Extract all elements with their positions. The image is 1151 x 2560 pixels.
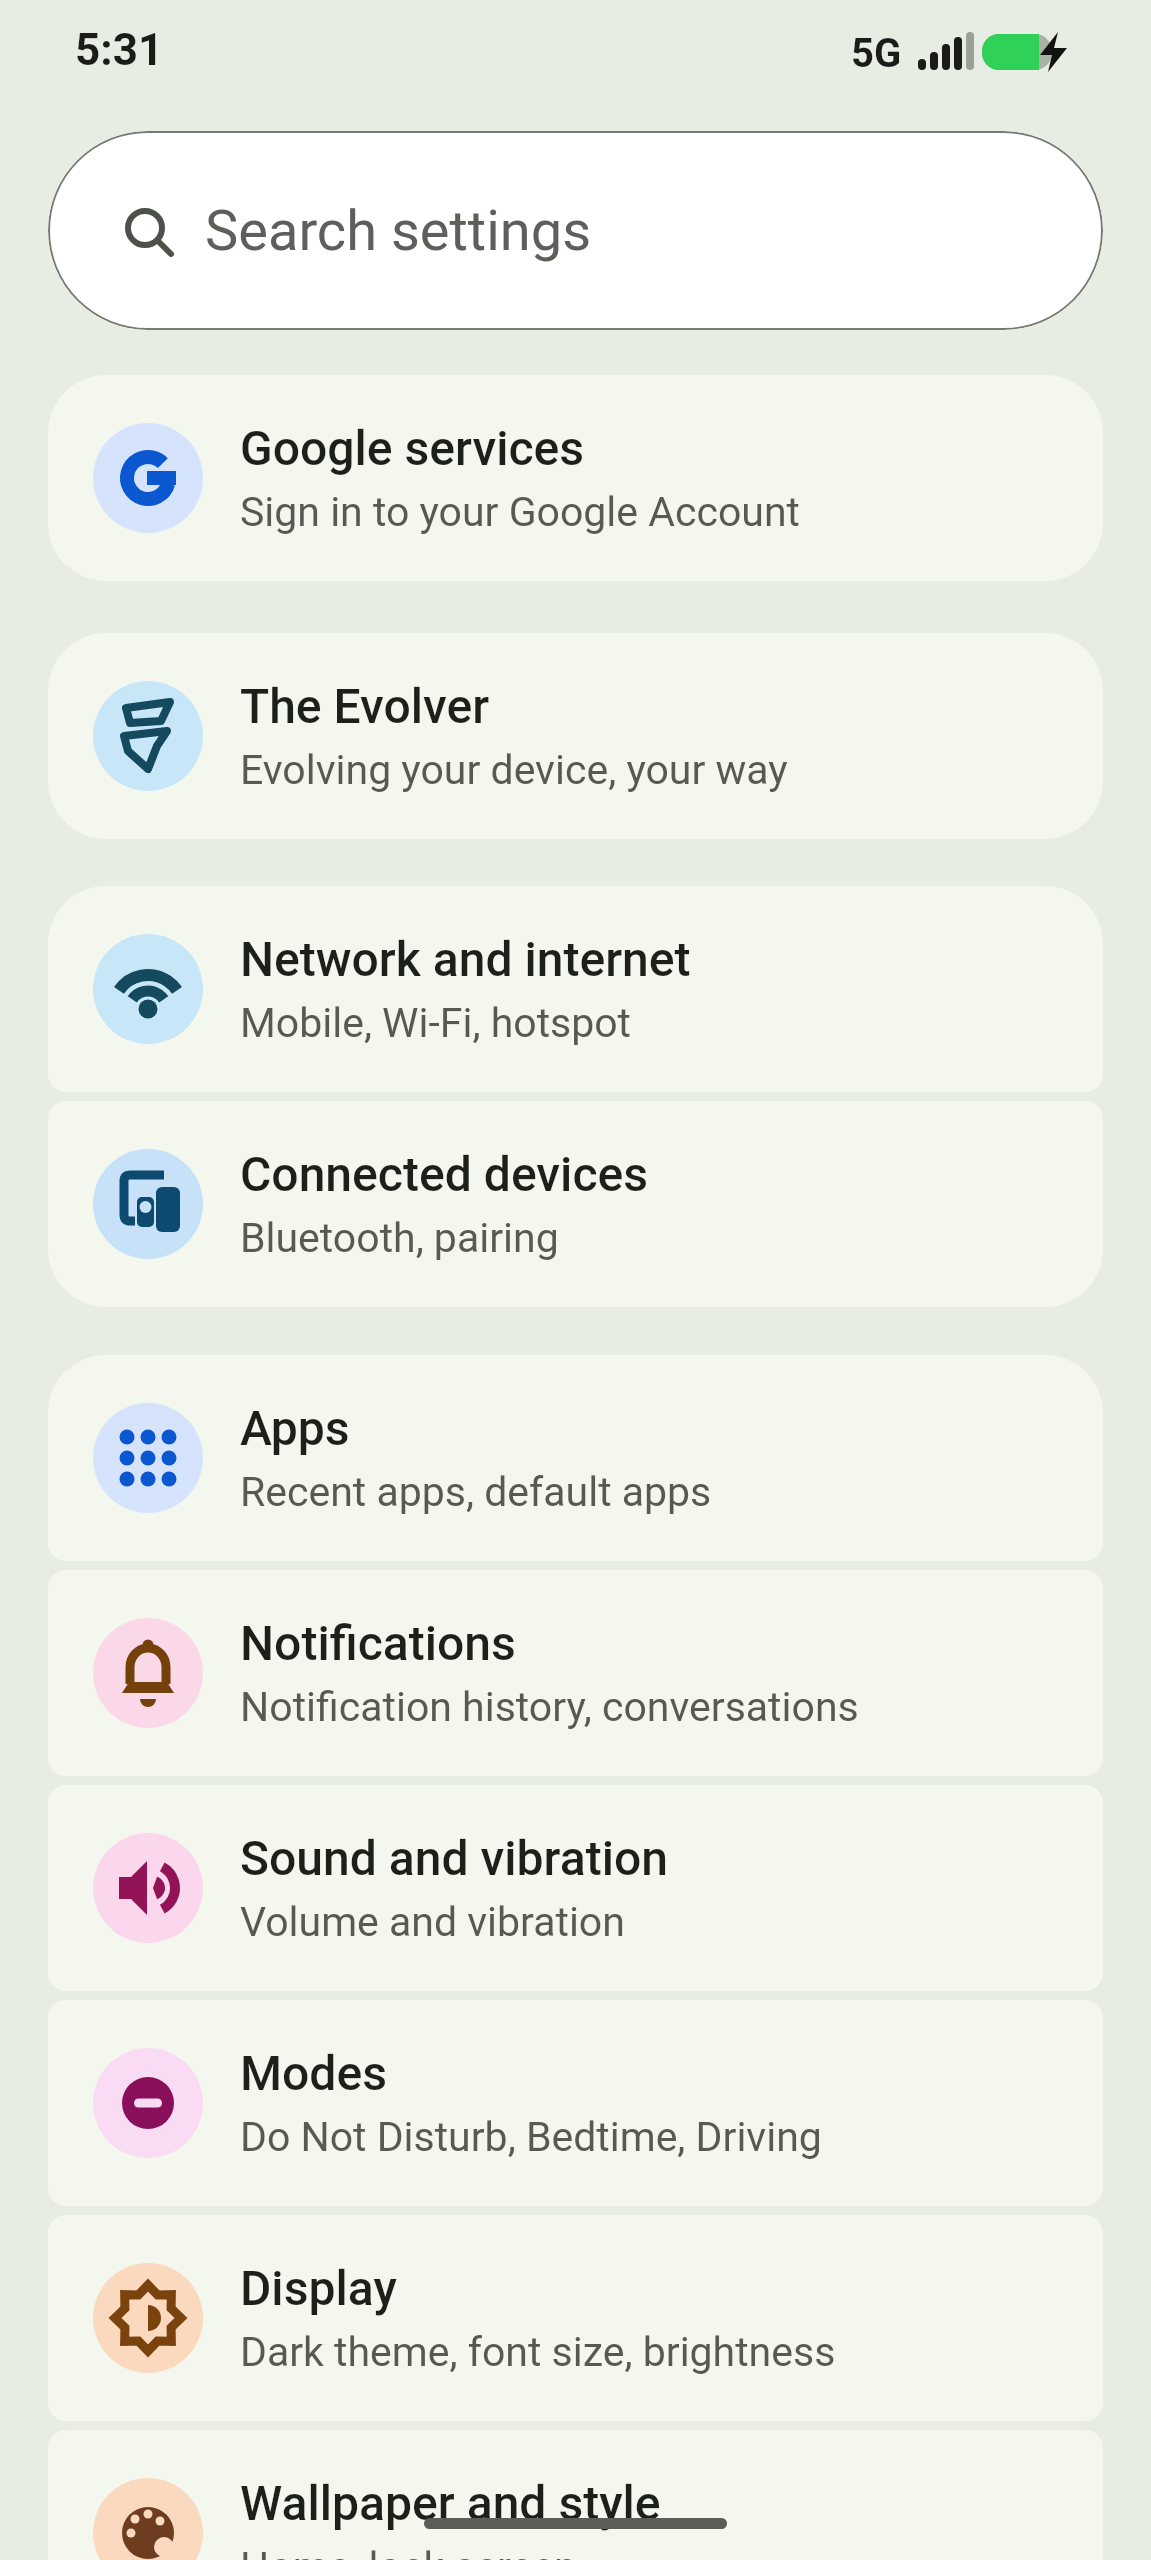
staticText: Apps — [240, 1400, 350, 1456]
button[interactable]: Connected devices — [48, 1101, 1103, 1307]
staticText: Connected devices — [240, 1146, 649, 1202]
staticText: Bluetooth, pairing — [240, 1214, 559, 1262]
staticText: The Evolver — [240, 678, 490, 734]
button[interactable]: Display — [48, 2215, 1103, 2421]
staticText: Recent apps, default apps — [240, 1468, 712, 1516]
button[interactable]: Notifications — [48, 1570, 1103, 1776]
staticText: 5G — [851, 30, 902, 74]
staticText: Notifications — [240, 1615, 516, 1671]
staticText: Dark theme, font size, brightness — [240, 2328, 836, 2376]
staticText: Home, lock screen — [240, 2543, 577, 2560]
button[interactable]: Sound and vibration — [48, 1785, 1103, 1991]
staticText: Wallpaper and style — [240, 2475, 661, 2531]
staticText: Evolving your device, your way — [240, 746, 788, 794]
button[interactable]: Search settings — [48, 131, 1103, 330]
button[interactable]: Network and internet — [48, 886, 1103, 1092]
staticText: Do Not Disturb, Bedtime, Driving — [240, 2113, 822, 2161]
staticText: Display — [240, 2260, 397, 2316]
staticText: 5:31 — [75, 24, 164, 76]
button[interactable]: Apps — [48, 1355, 1103, 1561]
staticText: Modes — [240, 2045, 388, 2101]
staticText: Mobile, Wi-Fi, hotspot — [240, 999, 632, 1047]
staticText: Notification history, conversations — [240, 1683, 859, 1731]
button[interactable]: Modes — [48, 2000, 1103, 2206]
button[interactable]: Wallpaper and style — [48, 2430, 1103, 2560]
staticText: Sign in to your Google Account — [240, 488, 800, 536]
button[interactable]: Google services — [48, 375, 1103, 581]
staticText: Search settings — [205, 198, 592, 264]
staticText: Network and internet — [240, 931, 691, 987]
button[interactable]: The Evolver — [48, 633, 1103, 839]
staticText: Sound and vibration — [240, 1830, 669, 1886]
staticText: Volume and vibration — [240, 1898, 625, 1946]
staticText: Google services — [240, 420, 585, 476]
